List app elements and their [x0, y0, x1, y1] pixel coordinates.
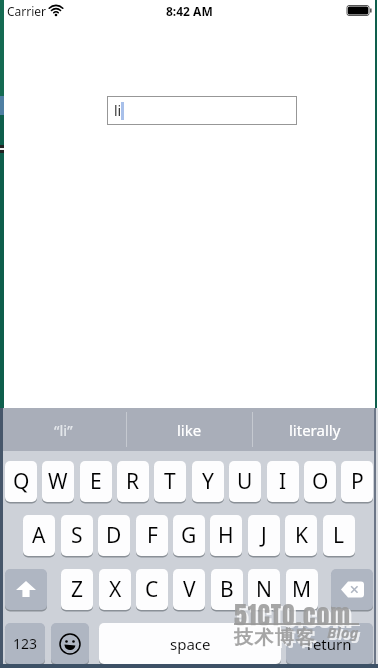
- button[interactable]: Y: [192, 461, 224, 502]
- staticText: 123: [13, 634, 38, 653]
- button[interactable]: literally: [252, 408, 378, 451]
- button[interactable]: “li”: [0, 408, 126, 451]
- staticText: literally: [289, 420, 341, 440]
- staticText: W: [48, 467, 68, 496]
- button[interactable]: P: [341, 461, 373, 502]
- staticText: 51CTO.com: [236, 597, 354, 636]
- staticText: like: [177, 420, 202, 440]
- staticText: I: [279, 467, 287, 496]
- button[interactable]: Z: [61, 569, 93, 610]
- button[interactable]: 123: [5, 623, 45, 664]
- staticText: 技术博客: [233, 626, 315, 650]
- button[interactable]: U: [229, 461, 261, 502]
- staticText: L: [333, 521, 345, 550]
- staticText: P: [351, 467, 364, 496]
- staticText: G: [181, 521, 197, 550]
- button[interactable]: [51, 623, 89, 664]
- staticText: N: [256, 575, 272, 604]
- staticText: O: [312, 467, 329, 496]
- staticText: B: [220, 575, 234, 604]
- staticText: D: [106, 521, 122, 550]
- button[interactable]: L: [323, 515, 355, 556]
- button[interactable]: K: [285, 515, 317, 556]
- staticText: R: [126, 467, 140, 496]
- button[interactable]: J: [248, 515, 280, 556]
- button[interactable]: X: [99, 569, 131, 610]
- staticText: space: [170, 634, 211, 654]
- button[interactable]: W: [42, 461, 74, 502]
- button[interactable]: like: [126, 408, 252, 451]
- button[interactable]: B: [211, 569, 243, 610]
- staticText: return: [307, 634, 352, 654]
- button[interactable]: T: [154, 461, 186, 502]
- staticText: 51CTO.com: [234, 595, 352, 634]
- staticText: Y: [202, 467, 214, 496]
- staticText: 技术博客: [235, 628, 317, 652]
- button[interactable]: N: [248, 569, 280, 610]
- staticText: Carrier: [7, 3, 47, 19]
- button[interactable]: A: [23, 515, 55, 556]
- staticText: Blog: [329, 624, 361, 644]
- button[interactable]: D: [98, 515, 130, 556]
- staticText: S: [71, 521, 83, 550]
- button[interactable]: G: [173, 515, 205, 556]
- staticText: X: [109, 575, 122, 604]
- button[interactable]: R: [117, 461, 149, 502]
- staticText: Q: [13, 467, 30, 496]
- staticText: K: [295, 521, 308, 550]
- staticText: V: [183, 575, 196, 604]
- button[interactable]: E: [80, 461, 112, 502]
- button[interactable]: [331, 569, 373, 610]
- staticText: J: [261, 521, 267, 550]
- button[interactable]: H: [210, 515, 242, 556]
- button[interactable]: li: [107, 96, 297, 125]
- button[interactable]: F: [136, 515, 168, 556]
- staticText: A: [32, 521, 46, 550]
- button[interactable]: O: [304, 461, 336, 502]
- staticText: U: [237, 467, 253, 496]
- staticText: M: [292, 575, 312, 604]
- staticText: Blog: [327, 622, 359, 642]
- button[interactable]: V: [173, 569, 205, 610]
- staticText: Z: [71, 575, 84, 604]
- staticText: F: [147, 521, 158, 550]
- staticText: T: [164, 467, 176, 496]
- staticText: 8:42 AM: [166, 3, 213, 19]
- button[interactable]: Q: [5, 461, 37, 502]
- button[interactable]: [5, 569, 47, 610]
- button[interactable]: I: [267, 461, 299, 502]
- staticText: “li”: [54, 420, 73, 440]
- staticText: C: [145, 575, 159, 604]
- button[interactable]: return: [286, 623, 373, 664]
- staticText: H: [218, 521, 234, 550]
- button[interactable]: space: [99, 623, 281, 664]
- button[interactable]: C: [136, 569, 168, 610]
- button[interactable]: S: [61, 515, 93, 556]
- button[interactable]: M: [286, 569, 318, 610]
- staticText: li: [114, 101, 122, 120]
- staticText: E: [90, 467, 102, 496]
